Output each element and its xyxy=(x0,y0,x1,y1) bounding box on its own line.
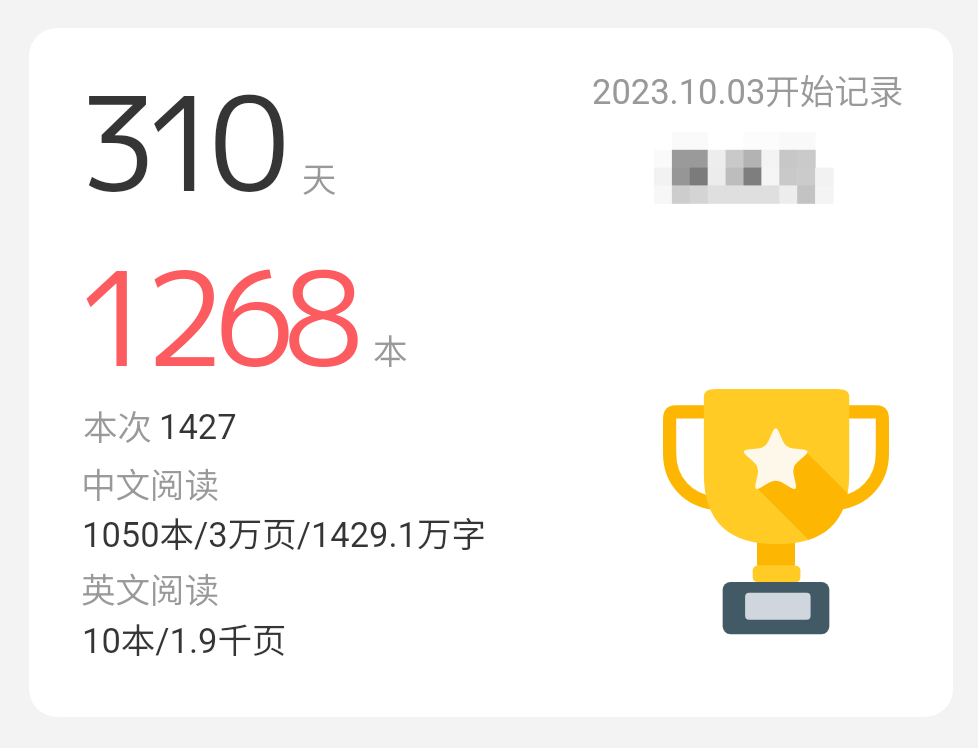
staticText: 英文阅读 xyxy=(81,563,219,613)
button[interactable]: 310 xyxy=(29,28,953,717)
staticText: 本 xyxy=(373,324,408,374)
other: 昵称已打码 xyxy=(654,132,839,207)
staticText: 310 xyxy=(78,51,275,232)
staticText: 2023.10.03开始记录 xyxy=(592,64,904,114)
staticText: 1050本/3万页/1429.1万字 xyxy=(82,507,486,557)
button[interactable]: 成就奖杯 xyxy=(663,389,889,636)
staticText: 1427 xyxy=(159,407,237,447)
staticText: 中文阅读 xyxy=(81,458,219,508)
staticText: 10本/1.9千页 xyxy=(82,613,287,663)
staticText: 天 xyxy=(302,152,337,202)
staticText: 本次 xyxy=(83,400,152,450)
staticText: 1268 xyxy=(76,226,353,407)
